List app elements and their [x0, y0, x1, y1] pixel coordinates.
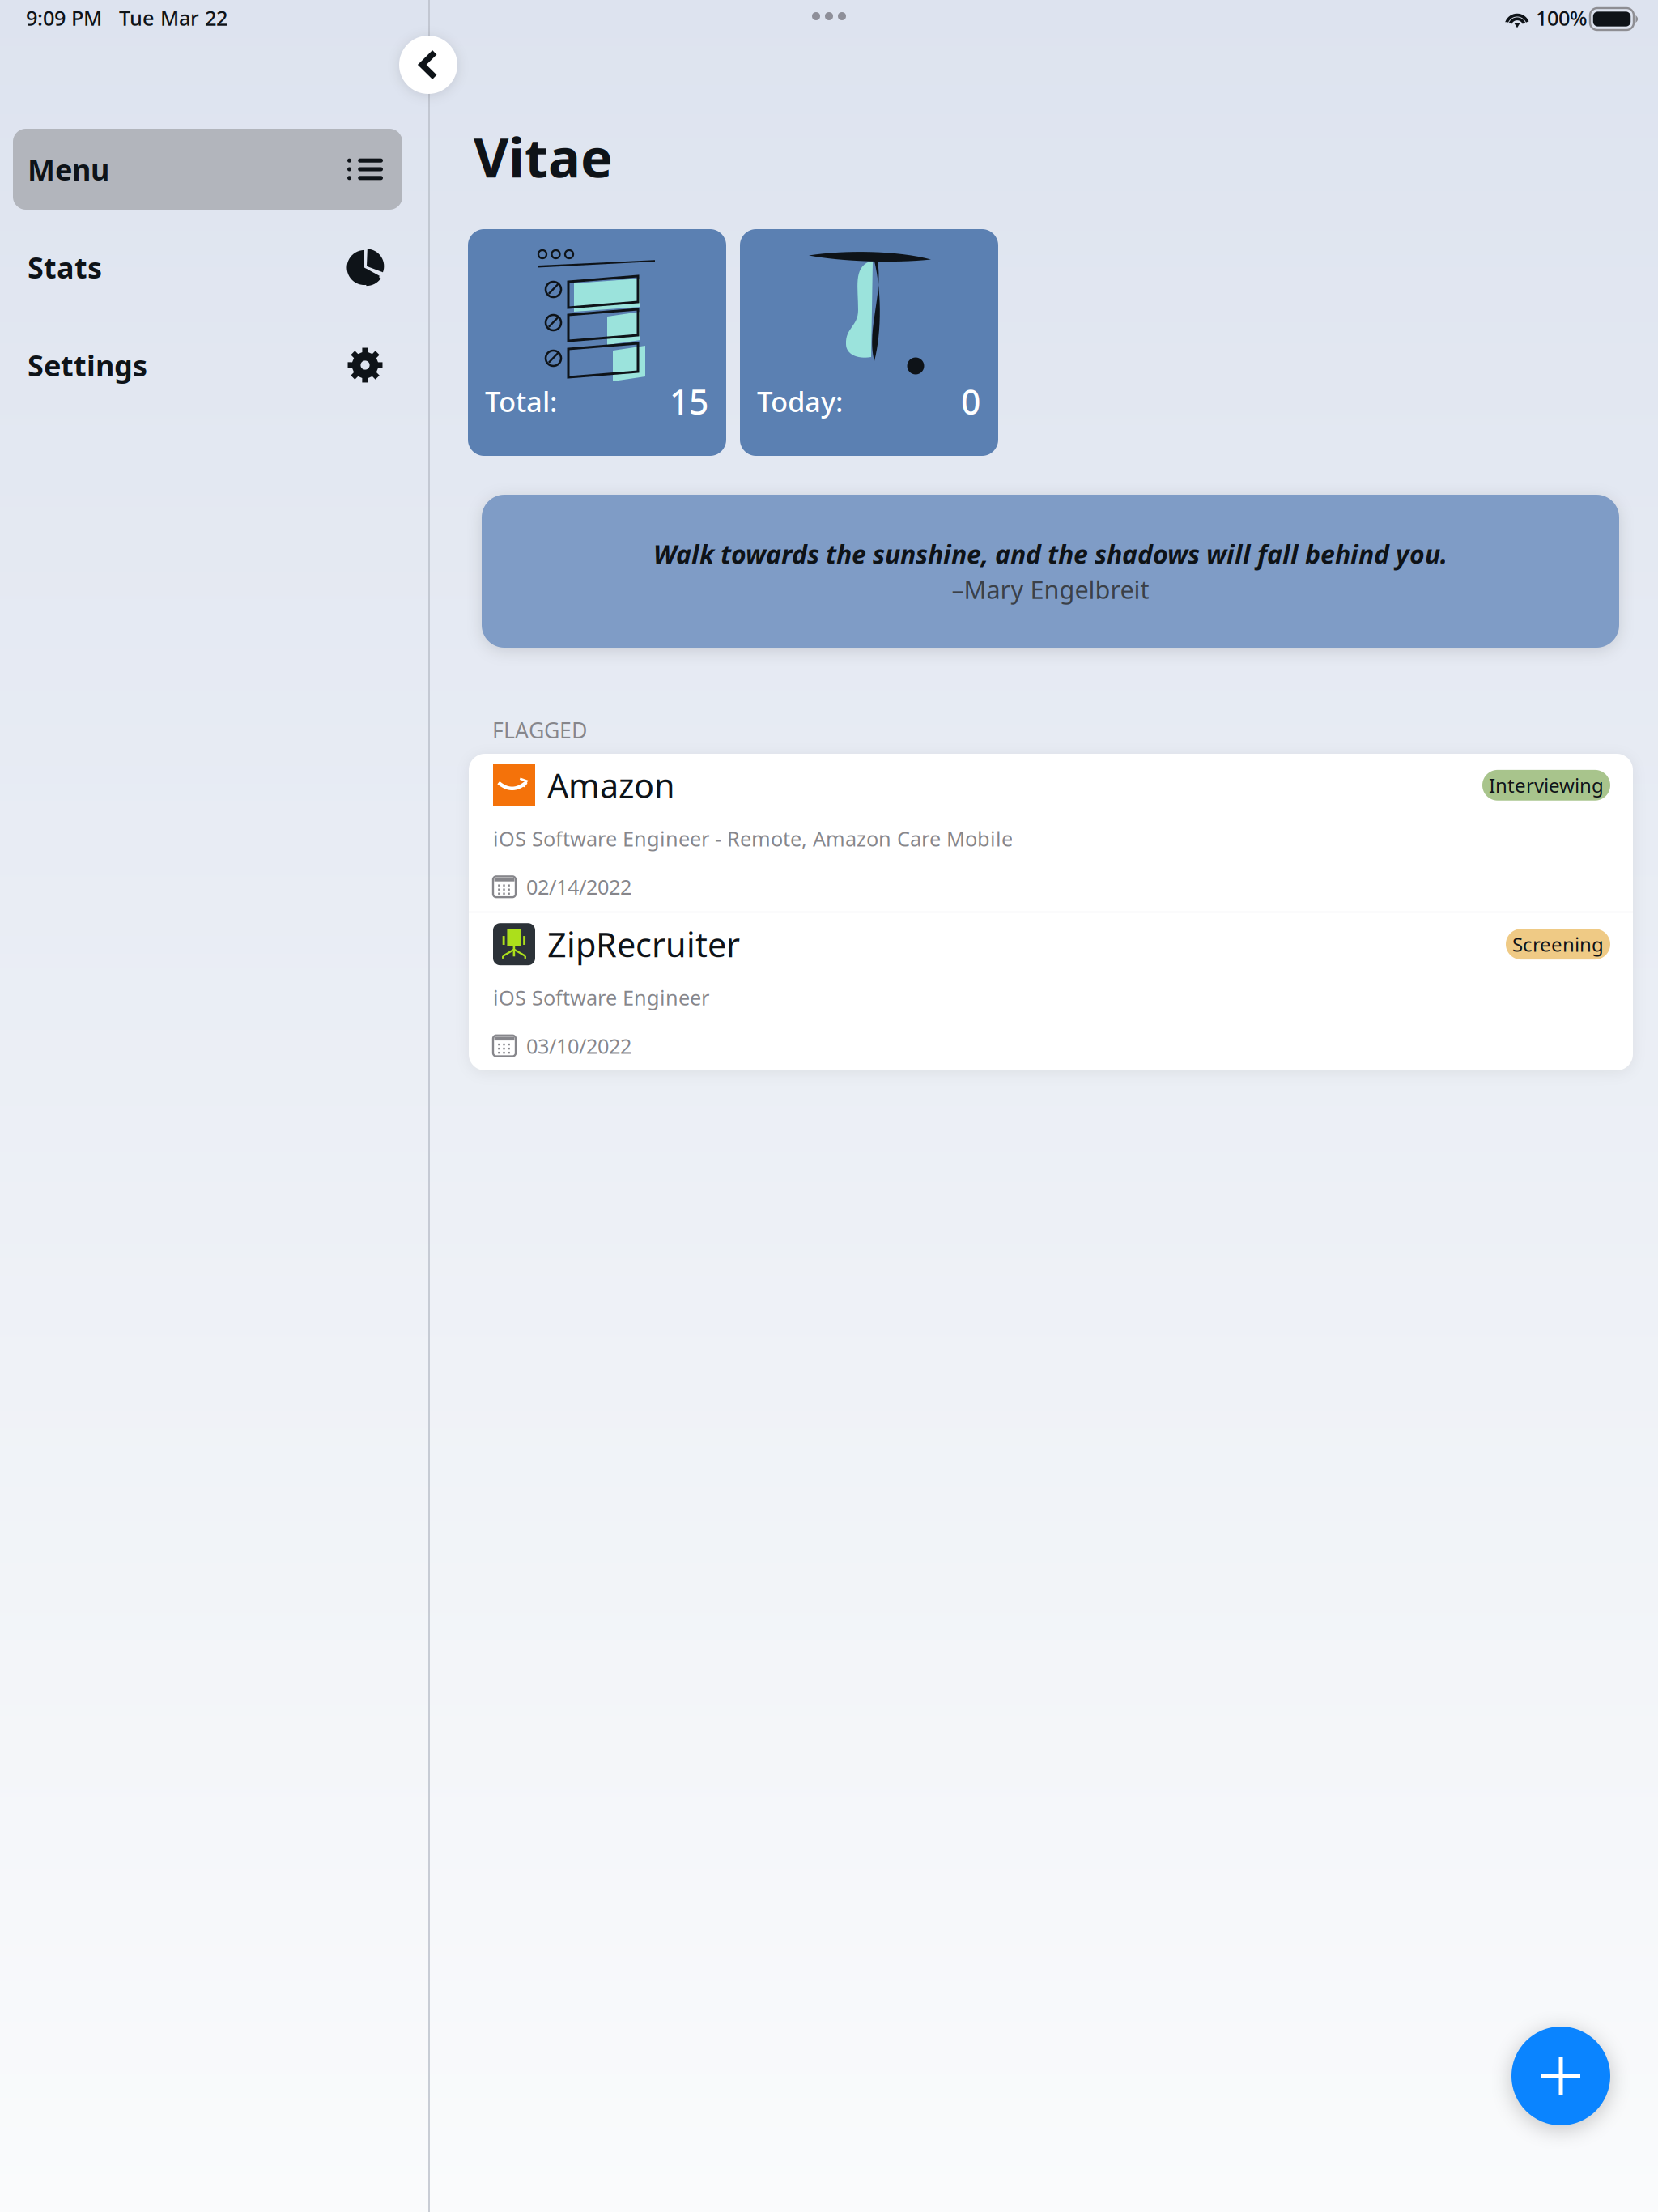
staticText: iOS Software Engineer [493, 984, 709, 1011]
staticText: Amazon [547, 763, 675, 807]
button[interactable]: Settings [13, 325, 402, 406]
button[interactable]: Today: [740, 229, 998, 456]
staticText: 100% [1536, 4, 1588, 31]
staticText: Today: [757, 383, 843, 420]
staticText: 9:09 PM [26, 4, 102, 31]
button[interactable]: Back [399, 36, 457, 94]
staticText: 02/14/2022 [526, 873, 631, 900]
staticText: 0 [961, 378, 980, 424]
staticText: FLAGGED [492, 716, 587, 744]
staticText: ZipRecruiter [547, 922, 740, 966]
button[interactable]: ZipRecruiter [469, 913, 1633, 1071]
staticText: Walk towards the sunshine, and the shado… [653, 537, 1448, 571]
staticText: –Mary Engelbreit [952, 573, 1149, 606]
staticText: Screening [1512, 931, 1604, 957]
button[interactable]: Total: [468, 229, 726, 456]
staticText: Tue Mar 22 [119, 4, 227, 31]
staticText: Total: [485, 383, 557, 420]
staticText: 03/10/2022 [526, 1032, 631, 1059]
button[interactable]: Menu [13, 129, 402, 210]
staticText: Settings [28, 346, 147, 385]
staticText: Vitae [474, 121, 613, 192]
staticText: 15 [670, 378, 708, 424]
button[interactable]: Stats [13, 227, 402, 308]
staticText: Interviewing [1489, 772, 1604, 798]
button[interactable]: Add job application [1511, 2027, 1610, 2125]
staticText: iOS Software Engineer - Remote, Amazon C… [493, 825, 1013, 852]
staticText: Menu [28, 150, 109, 189]
button[interactable]: Amazon [469, 754, 1633, 912]
staticText: Stats [28, 248, 102, 287]
